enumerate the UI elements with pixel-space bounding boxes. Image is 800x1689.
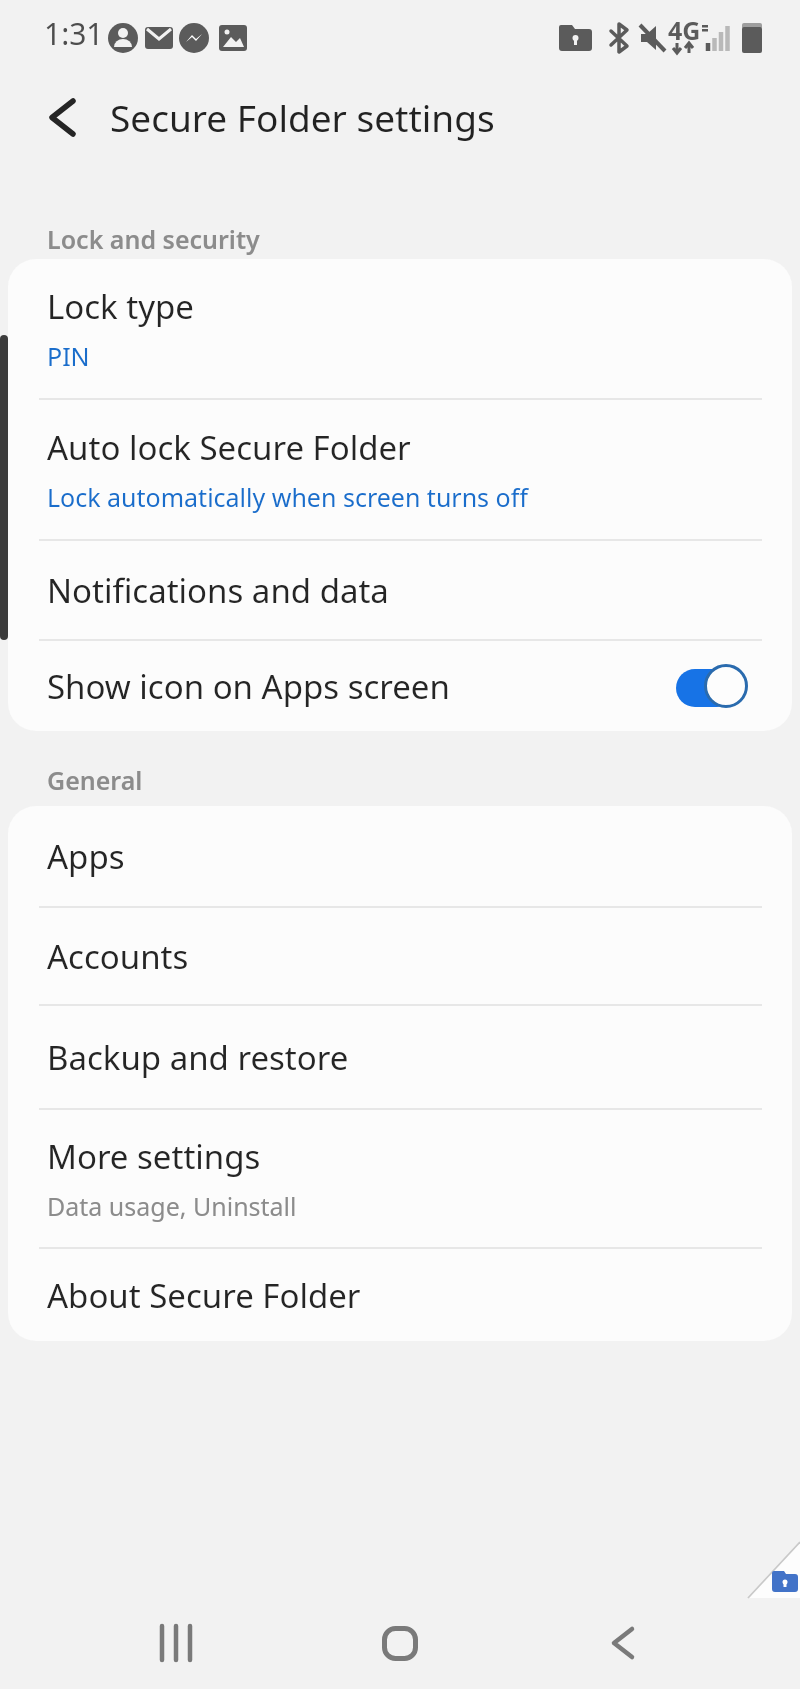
button[interactable] xyxy=(141,1608,211,1678)
button[interactable] xyxy=(588,1608,658,1678)
button[interactable]: About Secure Folder xyxy=(8,1249,792,1341)
staticText: Backup and restore xyxy=(47,1035,349,1080)
button[interactable]: Show icon on Apps screen xyxy=(8,641,792,731)
staticText: Show icon on Apps screen xyxy=(47,664,450,709)
button[interactable] xyxy=(676,664,748,708)
staticText: 1:31 xyxy=(44,13,104,54)
staticText: About Secure Folder xyxy=(47,1273,361,1318)
staticText: Apps xyxy=(47,834,125,879)
button[interactable] xyxy=(34,89,90,145)
button[interactable]: Lock type xyxy=(8,259,792,398)
staticText: PIN xyxy=(47,339,90,373)
staticText: Lock automatically when screen turns off xyxy=(47,480,528,514)
button[interactable]: Backup and restore xyxy=(8,1006,792,1108)
staticText: Data usage, Uninstall xyxy=(47,1189,297,1223)
button[interactable] xyxy=(365,1608,435,1678)
button[interactable]: Accounts xyxy=(8,908,792,1004)
staticText: Secure Folder settings xyxy=(110,92,495,142)
staticText: Lock type xyxy=(47,284,194,329)
button[interactable]: Notifications and data xyxy=(8,541,792,639)
staticText: Auto lock Secure Folder xyxy=(47,425,411,470)
staticText: More settings xyxy=(47,1134,261,1179)
staticText: Accounts xyxy=(47,934,189,979)
staticText: General xyxy=(47,763,143,797)
button[interactable]: More settings xyxy=(8,1110,792,1247)
button[interactable]: Auto lock Secure Folder xyxy=(8,400,792,539)
staticText: Notifications and data xyxy=(47,568,389,613)
button[interactable]: Apps xyxy=(8,806,792,906)
staticText: Lock and security xyxy=(47,222,260,256)
staticText: 4G xyxy=(668,13,701,47)
